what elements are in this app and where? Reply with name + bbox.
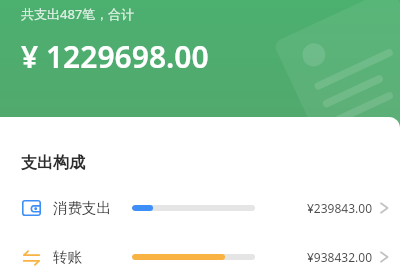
button[interactable]: 转账	[0, 237, 400, 277]
staticText: ¥ 1229698.00	[21, 36, 209, 77]
staticText: 支出构成	[21, 153, 85, 173]
button[interactable]: 消费支出	[0, 188, 400, 228]
staticText: 转账	[53, 248, 82, 266]
staticText: ¥239843.00	[307, 200, 372, 216]
staticText: ¥938432.00	[307, 249, 372, 265]
staticText: 共支出487笔，合计	[21, 5, 135, 23]
staticText: 消费支出	[53, 199, 111, 217]
